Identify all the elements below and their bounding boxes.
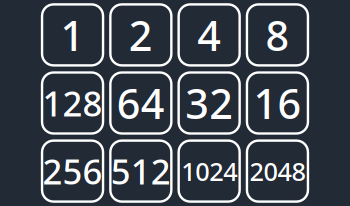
button[interactable]: 2 (110, 4, 171, 65)
staticText: 64 (117, 76, 165, 130)
button[interactable]: 8 (247, 4, 308, 65)
staticText: 1024 (181, 154, 237, 188)
button[interactable]: 16 (247, 72, 308, 133)
button[interactable]: 32 (179, 72, 240, 133)
button[interactable]: 128 (42, 72, 103, 133)
button[interactable]: 1 (42, 4, 103, 65)
button[interactable]: 256 (42, 141, 103, 202)
staticText: 32 (185, 76, 233, 130)
button[interactable]: 512 (110, 141, 171, 202)
button[interactable]: 1024 (179, 141, 240, 202)
staticText: 2 (129, 7, 153, 62)
button[interactable]: 64 (110, 72, 171, 133)
staticText: 16 (253, 76, 301, 130)
button[interactable]: 4 (179, 4, 240, 65)
staticText: 4 (197, 7, 221, 62)
staticText: 128 (43, 80, 103, 126)
staticText: 2048 (249, 154, 305, 188)
staticText: 8 (265, 7, 289, 62)
staticText: 512 (111, 148, 171, 194)
button[interactable]: 2048 (247, 141, 308, 202)
staticText: 256 (43, 148, 103, 194)
staticText: 1 (61, 7, 85, 62)
